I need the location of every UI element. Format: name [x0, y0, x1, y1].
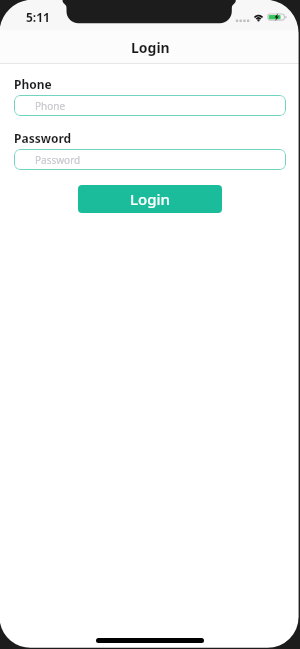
button[interactable]: Password — [14, 149, 286, 170]
staticText: Password — [14, 130, 72, 146]
button[interactable]: Phone — [14, 95, 286, 116]
button[interactable]: Login — [78, 185, 222, 213]
staticText: Phone — [14, 76, 52, 92]
staticText: Login — [130, 189, 170, 209]
staticText: Password — [35, 153, 81, 167]
staticText: Phone — [35, 99, 66, 113]
staticText: 5:11 — [26, 9, 50, 25]
staticText: Login — [131, 38, 170, 57]
